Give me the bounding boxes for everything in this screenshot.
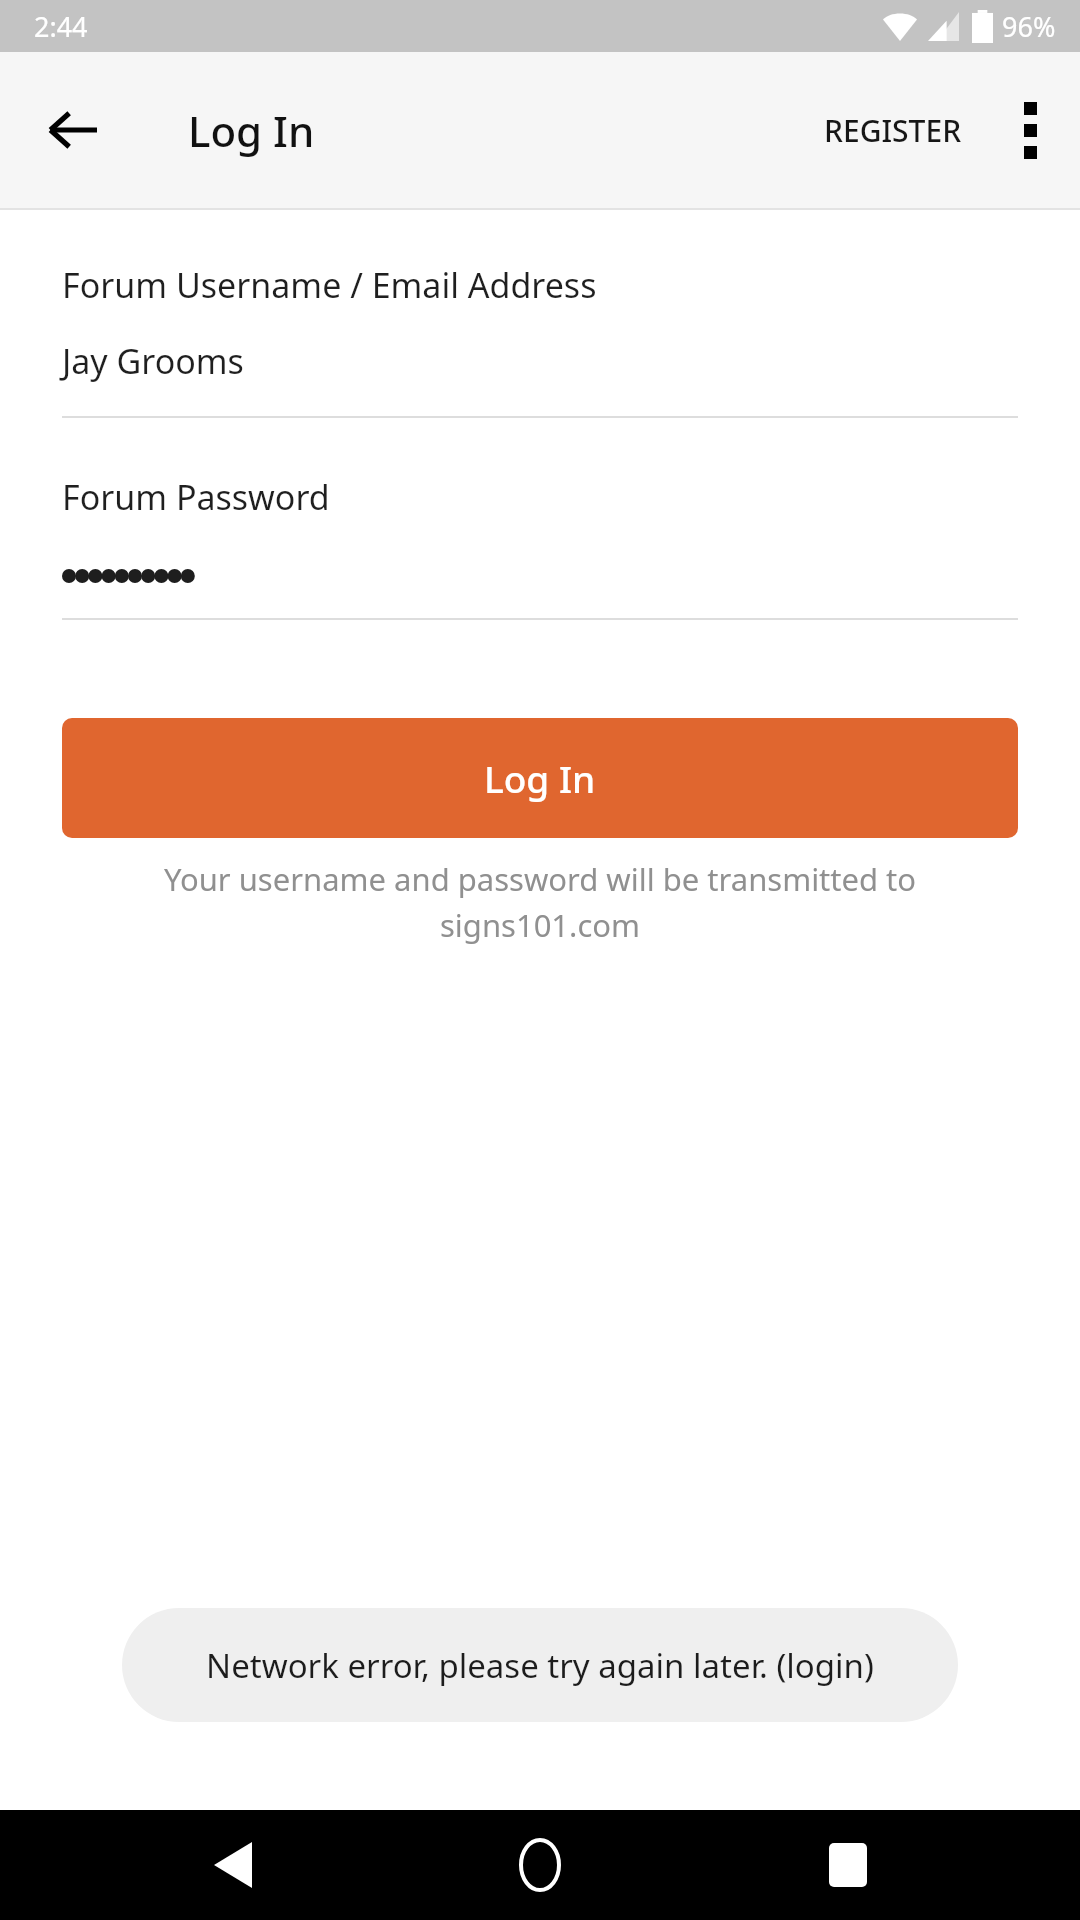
button[interactable]: More options bbox=[984, 77, 1076, 183]
button[interactable]: Home bbox=[465, 1810, 615, 1920]
staticText: REGISTER bbox=[824, 110, 962, 151]
staticText: Log In bbox=[188, 102, 315, 159]
button[interactable]: REGISTER bbox=[802, 84, 984, 177]
staticText: Your username and password will be trans… bbox=[118, 858, 962, 946]
staticText: 96% bbox=[1002, 8, 1056, 45]
staticText: Forum Username / Email Address bbox=[62, 262, 597, 308]
staticText: Network error, please try again later. (… bbox=[206, 1643, 874, 1688]
button[interactable]: Network error, please try again later. (… bbox=[122, 1608, 958, 1722]
button[interactable]: Recent apps bbox=[773, 1810, 923, 1920]
button[interactable]: Log In bbox=[62, 718, 1018, 838]
button[interactable]: Back bbox=[158, 1810, 308, 1920]
staticText: Jay Grooms bbox=[62, 338, 244, 384]
staticText: Forum Password bbox=[62, 474, 330, 520]
staticText: 2:44 bbox=[34, 8, 88, 45]
button[interactable]: Navigate up bbox=[20, 77, 126, 183]
staticText: Log In bbox=[484, 753, 596, 803]
